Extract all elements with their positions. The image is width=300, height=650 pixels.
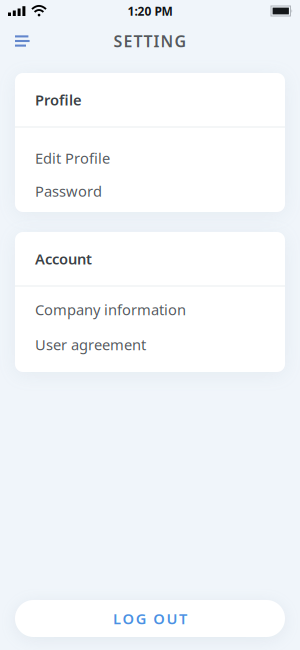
button[interactable]: Menu [7, 27, 38, 55]
staticText: 1:20 PM [127, 3, 172, 19]
staticText: LOG OUT [113, 609, 187, 628]
button[interactable]: User agreement [15, 327, 285, 362]
button[interactable]: Edit Profile [15, 141, 285, 174]
staticText: Edit Profile [35, 148, 110, 168]
button[interactable]: Password [15, 174, 285, 207]
staticText: Password [35, 181, 102, 201]
staticText: Company information [35, 300, 186, 319]
staticText: SETTING [113, 30, 186, 52]
staticText: Account [35, 249, 92, 268]
button[interactable]: Company information [15, 292, 285, 327]
staticText: Profile [35, 90, 82, 109]
staticText: User agreement [35, 335, 146, 354]
button[interactable]: LOG OUT [15, 600, 285, 637]
